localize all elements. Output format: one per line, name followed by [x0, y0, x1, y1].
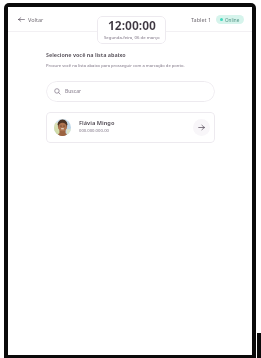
button[interactable]: Flávia Mingo	[46, 112, 215, 143]
staticText: Buscar	[65, 88, 82, 95]
staticText: Online	[225, 17, 240, 23]
staticText: Segunda-feira, 06 de março	[104, 34, 160, 40]
button[interactable]: Voltar	[16, 14, 46, 25]
staticText: Procure você na lista abaixo para prosse…	[46, 63, 185, 69]
button[interactable]: Online	[216, 15, 244, 24]
staticText: 12:00:00	[108, 17, 156, 33]
staticText: Tablet 1	[191, 16, 212, 23]
staticText: 000.000.000-00	[79, 128, 109, 134]
button[interactable]: 12:00:00	[97, 16, 166, 44]
button[interactable]: Buscar	[46, 81, 215, 102]
staticText: Voltar	[28, 16, 44, 23]
button[interactable]: Selecionar	[193, 119, 210, 136]
staticText: Flávia Mingo	[79, 119, 115, 127]
staticText: Selecione você na lista abaixo	[46, 51, 126, 58]
